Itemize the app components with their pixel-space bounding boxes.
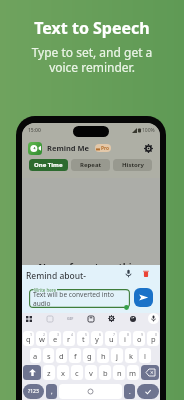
button[interactable]: k (125, 348, 137, 363)
button[interactable]: Theme (127, 313, 138, 324)
staticText: Type to set, and get a voice reminder. (0, 44, 184, 76)
staticText: g (87, 351, 92, 361)
button[interactable]: Space (59, 384, 122, 399)
button[interactable]: e (49, 331, 61, 346)
staticText: b (103, 368, 108, 378)
staticText: , (51, 388, 53, 396)
button[interactable]: n (113, 365, 125, 380)
button[interactable]: c (71, 365, 83, 380)
staticText: 15:00 (28, 127, 41, 134)
staticText: o (137, 334, 142, 344)
staticText: j (116, 351, 118, 361)
staticText: u (109, 334, 114, 344)
staticText: Write here (34, 287, 57, 293)
button[interactable]: a (30, 348, 41, 363)
button[interactable]: y (91, 331, 103, 346)
button[interactable]: f (69, 348, 81, 363)
button[interactable]: Pro (95, 144, 111, 152)
button[interactable]: o (133, 331, 145, 346)
button[interactable]: t (77, 331, 89, 346)
staticText: 100% (142, 127, 155, 134)
staticText: 1 (30, 332, 33, 337)
button[interactable]: r (63, 331, 75, 346)
button[interactable]: Comma (46, 384, 57, 399)
staticText: 6 (99, 332, 102, 337)
button[interactable]: m (127, 365, 139, 380)
button[interactable]: x (57, 365, 69, 380)
button[interactable]: d (56, 348, 67, 363)
staticText: n (117, 368, 122, 378)
staticText: q (26, 334, 31, 344)
staticText: 7 (113, 332, 116, 337)
staticText: History (122, 161, 144, 169)
button[interactable]: Repeat (71, 159, 110, 171)
staticText: w (39, 334, 45, 344)
staticText: s (47, 351, 51, 361)
button[interactable]: Period (124, 384, 135, 399)
staticText: Text will be converted into audio (33, 290, 130, 308)
button[interactable]: Voice input (122, 267, 135, 280)
staticText: 9 (141, 332, 144, 337)
staticText: GIF (67, 316, 74, 321)
staticText: Never forget anything (22, 260, 160, 273)
button[interactable]: Symbols (23, 384, 44, 399)
staticText: Remind Me (47, 143, 90, 153)
button[interactable]: Settings (142, 142, 155, 155)
button[interactable]: v (85, 365, 97, 380)
staticText: v (89, 368, 93, 378)
button[interactable]: b (99, 365, 111, 380)
staticText: x (61, 368, 65, 378)
button[interactable]: p (147, 331, 159, 346)
button[interactable]: Shift (23, 365, 41, 380)
button[interactable]: u (105, 331, 117, 346)
button[interactable]: j (111, 348, 123, 363)
staticText: Repeat (80, 161, 102, 169)
staticText: 3 (57, 332, 60, 337)
button[interactable]: Enter (137, 384, 159, 399)
staticText: e (53, 334, 58, 344)
staticText: 5 (85, 332, 88, 337)
button[interactable]: History (113, 159, 152, 171)
button[interactable]: w (36, 331, 47, 346)
button[interactable]: GIF (65, 313, 76, 324)
button[interactable]: Voice typing (148, 313, 159, 324)
button[interactable]: Send (134, 288, 153, 307)
button[interactable]: One Time (29, 159, 68, 171)
button[interactable]: z (43, 365, 55, 380)
staticText: l (144, 351, 146, 361)
staticText: r (67, 334, 71, 344)
button[interactable]: Delete (139, 267, 152, 280)
staticText: y (95, 334, 99, 344)
staticText: Pro (101, 145, 110, 152)
staticText: d (59, 351, 64, 361)
button[interactable]: i (119, 331, 131, 346)
staticText: Remind about- (26, 270, 87, 282)
button[interactable]: l (139, 348, 151, 363)
button[interactable]: Keyboard settings (106, 313, 117, 324)
staticText: ?123 (28, 388, 39, 395)
staticText: 2 (43, 332, 46, 337)
button[interactable]: g (83, 348, 95, 363)
staticText: c (75, 368, 79, 378)
button[interactable]: Stickers (44, 313, 55, 324)
button[interactable]: h (97, 348, 109, 363)
button[interactable]: s (43, 348, 54, 363)
staticText: 0 (155, 332, 158, 337)
staticText: Text to Speech (0, 17, 184, 39)
staticText: m (129, 368, 137, 378)
staticText: . (129, 388, 131, 396)
button[interactable]: Apps (23, 313, 34, 324)
staticText: 4 (71, 332, 74, 337)
button[interactable]: Clipboard (85, 313, 96, 324)
button[interactable]: Backspace (141, 365, 159, 380)
staticText: t (82, 334, 85, 344)
staticText: 8 (127, 332, 130, 337)
button[interactable]: q (23, 331, 34, 346)
staticText: h (101, 351, 106, 361)
staticText: z (47, 368, 51, 378)
staticText: p (151, 334, 156, 344)
staticText: k (129, 351, 134, 361)
staticText: f (74, 351, 77, 361)
staticText: i (124, 334, 126, 344)
staticText: One Time (34, 161, 63, 169)
